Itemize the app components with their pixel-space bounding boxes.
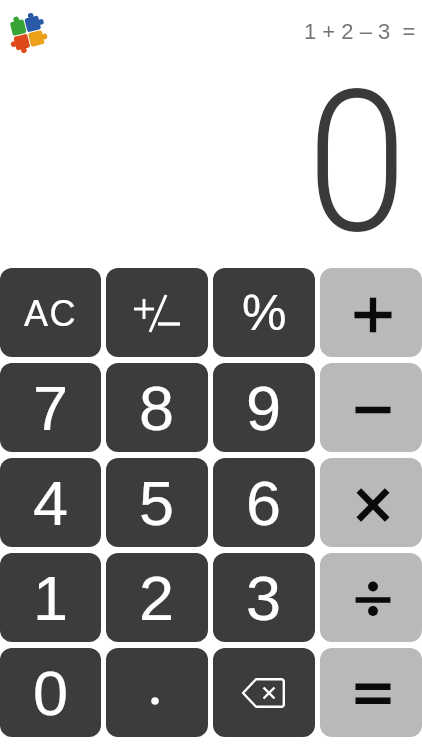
button[interactable]: 0 <box>0 648 101 737</box>
button[interactable] <box>10 16 46 52</box>
button[interactable]: 1 <box>0 553 101 642</box>
button[interactable] <box>320 268 422 357</box>
staticText: 9 <box>246 373 282 443</box>
button[interactable]: 8 <box>106 363 208 452</box>
staticText: 7 <box>33 373 69 443</box>
staticText: 3 <box>246 563 282 633</box>
button[interactable]: % <box>213 268 315 357</box>
staticText: 0 <box>33 658 69 728</box>
button[interactable] <box>320 363 422 452</box>
staticText: 6 <box>246 468 282 538</box>
staticText: 2 <box>139 563 175 633</box>
staticText: AC <box>24 293 78 333</box>
button[interactable] <box>320 458 422 547</box>
staticText: 4 <box>33 468 69 538</box>
button[interactable] <box>213 648 315 737</box>
button[interactable]: 9 <box>213 363 315 452</box>
staticText: % <box>242 285 287 341</box>
button[interactable]: AC <box>0 268 101 357</box>
button[interactable] <box>320 648 422 737</box>
button[interactable] <box>320 553 422 642</box>
staticText: 1 + 2 – 3 = <box>304 19 416 44</box>
button[interactable]: 5 <box>106 458 208 547</box>
staticText: 5 <box>139 468 175 538</box>
button[interactable] <box>106 268 208 357</box>
button[interactable]: 3 <box>213 553 315 642</box>
staticText: 1 <box>33 563 69 633</box>
staticText: 0 <box>307 47 408 278</box>
staticText: 8 <box>139 373 175 443</box>
button[interactable]: 2 <box>106 553 208 642</box>
button[interactable]: 4 <box>0 458 101 547</box>
button[interactable]: 7 <box>0 363 101 452</box>
button[interactable]: 6 <box>213 458 315 547</box>
button[interactable] <box>106 648 208 737</box>
